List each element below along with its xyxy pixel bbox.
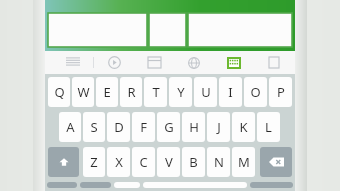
button[interactable]: Emoji [80, 182, 111, 188]
button[interactable]: Play [94, 51, 134, 74]
staticText: K [239, 118, 248, 136]
button[interactable]: Globe [174, 51, 214, 74]
staticText: T [152, 83, 160, 101]
button[interactable]: O [244, 77, 267, 107]
button[interactable]: V [157, 147, 180, 177]
staticText: X [115, 153, 123, 171]
button[interactable]: T [144, 77, 167, 107]
button[interactable]: J [207, 112, 230, 142]
button[interactable] [149, 13, 186, 47]
button[interactable]: P [269, 77, 292, 107]
button[interactable]: Comma [114, 182, 140, 188]
staticText: Y [177, 83, 185, 101]
staticText: O [250, 83, 261, 101]
button[interactable]: A [59, 112, 81, 142]
button[interactable]: Backspace [260, 147, 292, 177]
button[interactable]: L [257, 112, 280, 142]
staticText: L [265, 118, 272, 136]
button[interactable]: Symbols [47, 182, 77, 188]
button[interactable]: Window [134, 51, 174, 74]
staticText: M [238, 153, 250, 171]
button[interactable]: F [132, 112, 155, 142]
staticText: V [165, 153, 173, 171]
button[interactable] [188, 13, 292, 47]
staticText: P [277, 83, 285, 101]
button[interactable] [48, 13, 147, 47]
staticText: S [90, 118, 98, 136]
button[interactable]: Space [143, 182, 247, 188]
button[interactable]: X [107, 147, 130, 177]
staticText: Q [54, 83, 65, 101]
staticText: R [127, 83, 136, 101]
staticText: H [189, 118, 199, 136]
button[interactable]: U [194, 77, 217, 107]
button[interactable]: Menu [53, 51, 93, 74]
button[interactable]: D [107, 112, 130, 142]
staticText: W [77, 83, 90, 101]
button[interactable]: C [132, 147, 155, 177]
button[interactable]: W [72, 77, 94, 107]
staticText: F [140, 118, 147, 136]
button[interactable]: R [120, 77, 142, 107]
staticText: N [214, 153, 224, 171]
button[interactable]: M [232, 147, 255, 177]
button[interactable]: Return [250, 182, 293, 188]
staticText: C [139, 153, 148, 171]
button[interactable]: I [219, 77, 242, 107]
button[interactable]: Q [48, 77, 70, 107]
staticText: D [114, 118, 124, 136]
button[interactable]: K [232, 112, 255, 142]
button[interactable]: E [96, 77, 118, 107]
staticText: B [189, 153, 198, 171]
button[interactable]: Z [83, 147, 105, 177]
button[interactable]: Shift [48, 147, 79, 177]
button[interactable]: N [207, 147, 230, 177]
staticText: E [103, 83, 111, 101]
staticText: J [217, 118, 221, 136]
button[interactable]: Y [169, 77, 192, 107]
button[interactable]: Keyboard [214, 51, 254, 74]
button[interactable]: H [182, 112, 205, 142]
button[interactable]: G [157, 112, 180, 142]
staticText: A [66, 118, 75, 136]
staticText: Z [90, 153, 98, 171]
button[interactable]: B [182, 147, 205, 177]
button[interactable]: S [83, 112, 105, 142]
staticText: U [201, 83, 211, 101]
staticText: G [164, 118, 174, 136]
button[interactable]: More [254, 51, 294, 74]
staticText: I [228, 83, 233, 101]
